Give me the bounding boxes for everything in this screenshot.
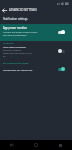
button[interactable]: Percentage on status bar	[0, 65, 72, 73]
button[interactable]: Recent apps	[48, 140, 72, 150]
button[interactable]	[58, 67, 65, 71]
button[interactable]: App power monitor	[0, 24, 72, 41]
staticText: Devices charging faster but the charger …	[3, 49, 32, 57]
staticText: CHARGING	[3, 42, 14, 45]
staticText: Monitor the power usage of apps and send…	[3, 31, 38, 37]
button[interactable]	[58, 49, 65, 53]
staticText: BALANCED BATTERY MODE	[3, 62, 29, 65]
staticText: ADVANCED SETTINGS	[9, 8, 37, 12]
button[interactable]: Back	[0, 6, 9, 14]
button[interactable]: Back	[0, 140, 24, 150]
staticText: App power monitor	[3, 26, 27, 30]
button[interactable]: Home	[24, 140, 48, 150]
button[interactable]: Fast cable charging	[0, 45, 72, 57]
staticText: Percentage on status bar	[3, 68, 56, 71]
staticText: Notification settings	[3, 17, 28, 21]
button[interactable]	[58, 30, 65, 34]
staticText: Fast cable charging	[3, 45, 26, 48]
